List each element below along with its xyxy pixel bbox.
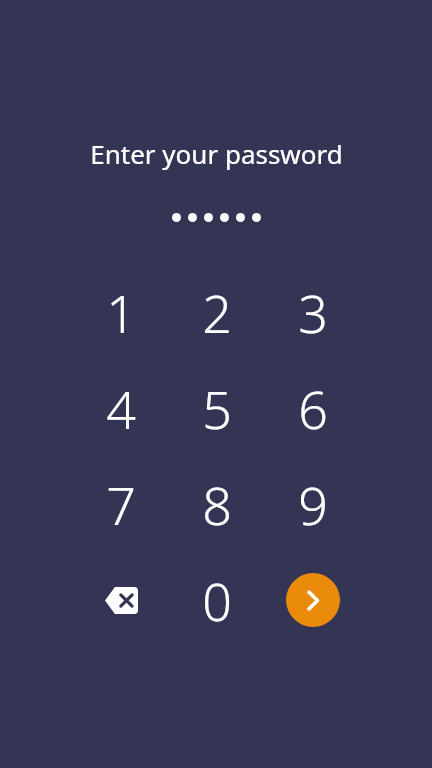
staticText: 9 [298,469,328,540]
button[interactable]: Confirm password [265,552,360,648]
button[interactable]: 0 [169,552,265,648]
staticText: 3 [298,277,328,348]
staticText: 8 [202,469,232,540]
button[interactable]: 5 [169,360,265,456]
staticText: 2 [202,277,232,348]
button[interactable]: 8 [169,456,265,552]
staticText: 1 [106,277,136,348]
staticText: Enter your password [90,136,343,171]
button[interactable]: 9 [265,456,360,552]
button[interactable]: 6 [265,360,360,456]
staticText: 4 [106,373,136,444]
button[interactable]: 2 [169,264,265,360]
button[interactable]: 4 [73,360,169,456]
button[interactable]: 7 [73,456,169,552]
staticText: 7 [106,469,136,540]
button[interactable]: 1 [73,264,169,360]
staticText: 0 [202,565,232,636]
staticText: 5 [202,373,232,444]
button[interactable]: 3 [265,264,360,360]
button[interactable]: Backspace [73,552,169,648]
staticText: 6 [298,373,328,444]
